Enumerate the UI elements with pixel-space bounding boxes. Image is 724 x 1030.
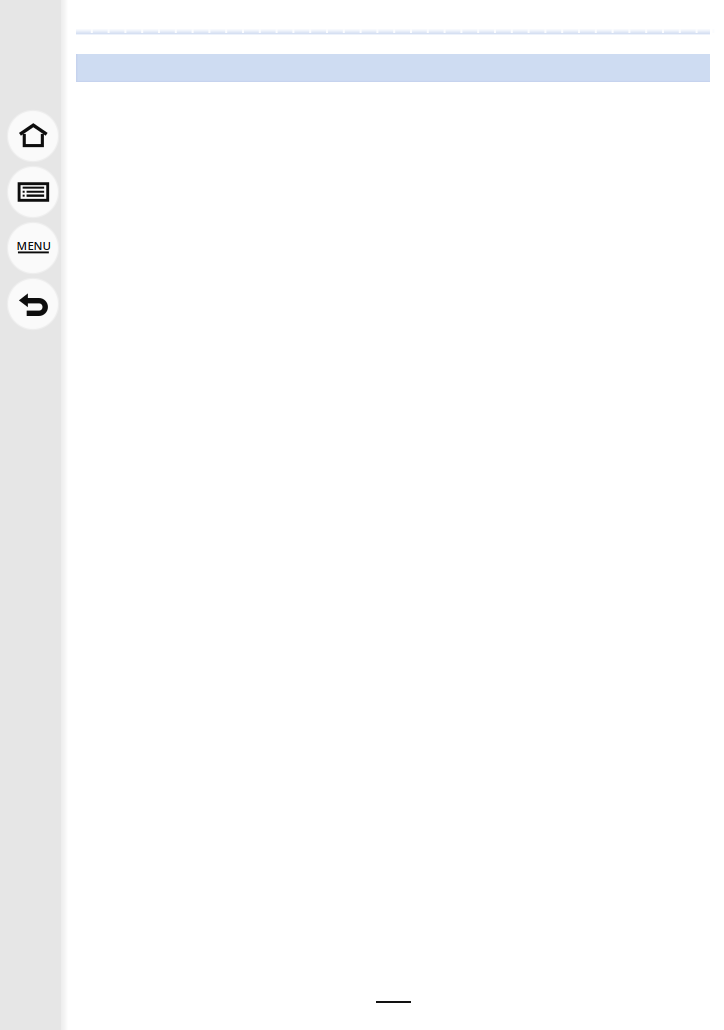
staticText: MENU	[16, 238, 50, 253]
button[interactable]: Menu	[5, 220, 61, 276]
button[interactable]: Contents	[5, 164, 61, 220]
button[interactable]: Back	[5, 276, 61, 332]
button[interactable]: Home	[5, 108, 61, 164]
